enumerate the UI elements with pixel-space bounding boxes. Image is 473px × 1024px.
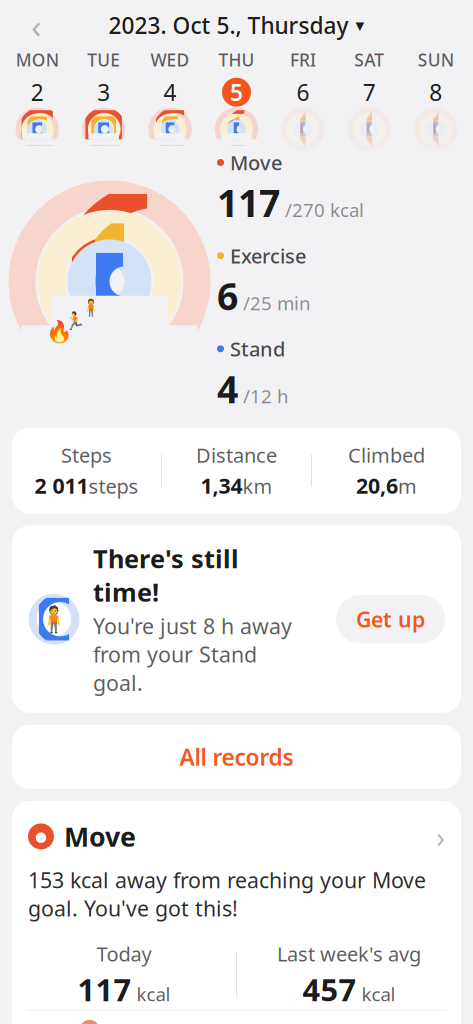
staticText: /12 h xyxy=(243,384,289,408)
staticText: 3 xyxy=(97,77,110,107)
staticText: 🧍 xyxy=(38,605,70,634)
staticText: 20,6 xyxy=(356,471,398,499)
button[interactable]: All records xyxy=(12,725,461,789)
staticText: TUE xyxy=(87,48,120,71)
staticText: Climbed xyxy=(348,442,425,468)
staticText: WED xyxy=(151,48,190,71)
staticText: 5 xyxy=(230,77,243,107)
button[interactable]: 2023. Oct 5., Thursday xyxy=(108,10,364,40)
staticText: MON xyxy=(16,48,59,71)
button[interactable]: TUE xyxy=(70,48,137,145)
staticText: ‹ xyxy=(31,3,41,47)
button[interactable]: Move xyxy=(12,801,461,866)
staticText: Steps xyxy=(61,442,112,468)
staticText: Distance xyxy=(196,442,277,468)
button[interactable]: THU xyxy=(203,48,270,145)
staticText: /25 min xyxy=(243,291,311,315)
staticText: SAT xyxy=(354,48,384,71)
staticText: 6 xyxy=(217,271,238,320)
staticText: Today xyxy=(96,940,151,967)
staticText: 1,34 xyxy=(200,471,242,499)
staticText: SUN xyxy=(418,48,454,71)
staticText: 2 xyxy=(31,77,44,107)
staticText: Last week's avg xyxy=(277,940,421,967)
button[interactable]: WED xyxy=(137,48,203,145)
staticText: 457 xyxy=(302,969,356,1010)
button[interactable]: SUN xyxy=(403,48,469,145)
staticText: Move xyxy=(230,149,282,176)
staticText: km xyxy=(242,473,272,499)
staticText: 4 xyxy=(217,364,238,414)
staticText: › xyxy=(436,817,445,856)
staticText: 117 xyxy=(77,969,131,1010)
staticText: 117 xyxy=(217,178,280,227)
staticText: 2023. Oct 5., Thursday xyxy=(108,10,348,40)
staticText: ▾ xyxy=(355,15,364,35)
staticText: /270 kcal xyxy=(285,197,364,222)
button[interactable]: MON xyxy=(4,48,70,145)
staticText: m xyxy=(398,473,417,499)
staticText: Exercise xyxy=(230,242,306,269)
staticText: 2 011 xyxy=(34,471,88,499)
staticText: kcal xyxy=(136,982,170,1006)
staticText: 🔥 xyxy=(46,319,73,343)
staticText: 🏃 xyxy=(64,311,86,331)
staticText: steps xyxy=(88,473,138,499)
staticText: 153 kcal away from reaching your Move go… xyxy=(28,866,426,923)
button[interactable]: FRI xyxy=(270,48,336,145)
staticText: THU xyxy=(218,48,254,71)
staticText: 🧍 xyxy=(81,298,101,317)
staticText: There's still time! xyxy=(93,541,239,609)
button[interactable]: SAT xyxy=(336,48,402,145)
button[interactable]: Get up xyxy=(336,595,445,643)
staticText: All records xyxy=(179,742,293,772)
staticText: FRI xyxy=(290,48,316,71)
staticText: 7 xyxy=(363,77,376,107)
staticText: 4 xyxy=(164,77,177,107)
staticText: Get up xyxy=(356,605,425,633)
staticText: Move xyxy=(64,819,136,854)
staticText: You're just 8 h away from your Stand goa… xyxy=(93,612,292,697)
staticText: 6 xyxy=(296,77,309,107)
button[interactable]: Previous day xyxy=(16,8,56,42)
staticText: kcal xyxy=(361,982,395,1006)
staticText: 8 xyxy=(429,77,442,107)
staticText: Stand xyxy=(230,335,285,362)
